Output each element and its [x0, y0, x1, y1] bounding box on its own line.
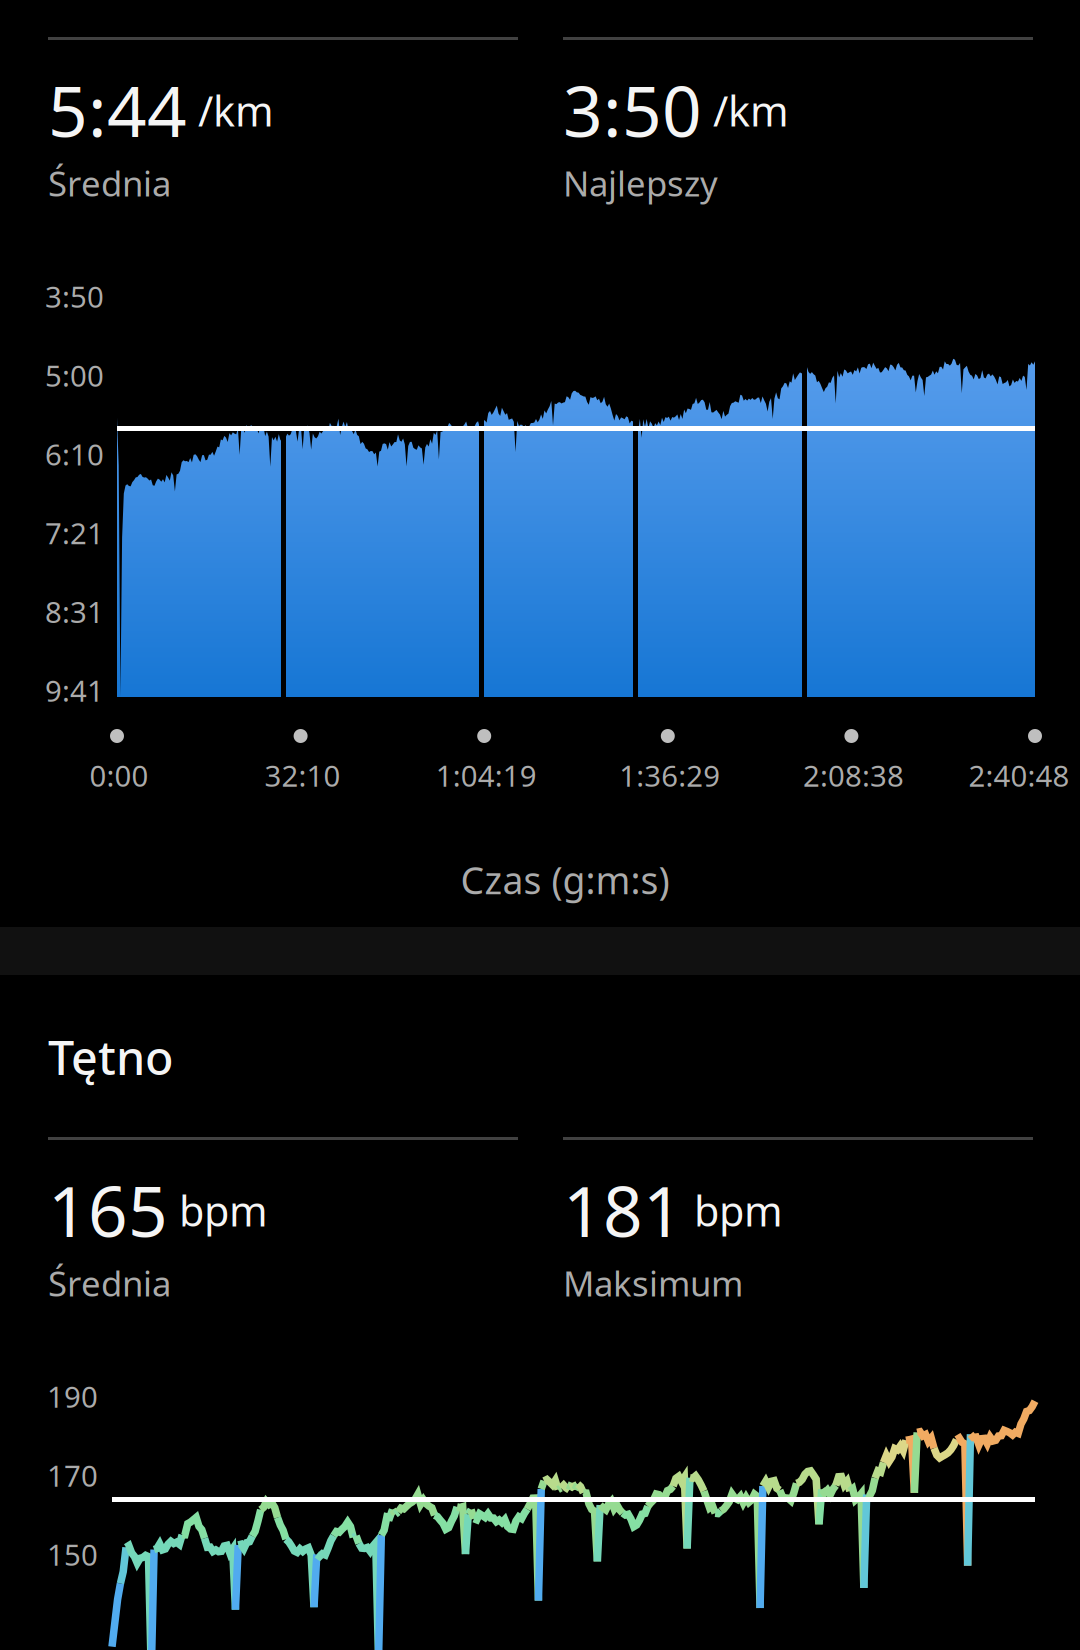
staticText: 5:00 [45, 356, 104, 395]
staticText: Tętno [48, 1026, 174, 1088]
staticText: 7:21 [45, 513, 104, 552]
staticText: 3:50 [45, 277, 104, 316]
staticText: 0:00 [89, 756, 148, 795]
staticText: Najlepszy [563, 160, 718, 206]
staticText: Czas (g:m:s) [460, 855, 669, 905]
staticText: 5:44 [48, 64, 187, 156]
staticText: 1:04:19 [436, 756, 537, 795]
staticText: 8:31 [45, 592, 104, 631]
staticText: Maksimum [563, 1260, 743, 1306]
staticText: 1:36:29 [619, 756, 720, 795]
staticText: 6:10 [45, 435, 104, 474]
staticText: 32:10 [265, 756, 341, 795]
staticText: bpm [179, 1183, 268, 1238]
staticText: /km [713, 83, 789, 138]
staticText: 3:50 [563, 64, 702, 156]
staticText: 2:40:48 [968, 756, 1069, 795]
staticText: 2:08:38 [803, 756, 904, 795]
staticText: bpm [694, 1183, 783, 1238]
staticText: Średnia [48, 1260, 171, 1306]
staticText: 190 [47, 1377, 98, 1416]
staticText: 165 [48, 1164, 168, 1256]
staticText: 181 [563, 1164, 683, 1256]
staticText: 170 [47, 1456, 98, 1495]
staticText: 9:41 [45, 671, 104, 710]
staticText: 150 [47, 1535, 98, 1574]
staticText: Średnia [48, 160, 171, 206]
staticText: /km [198, 83, 274, 138]
